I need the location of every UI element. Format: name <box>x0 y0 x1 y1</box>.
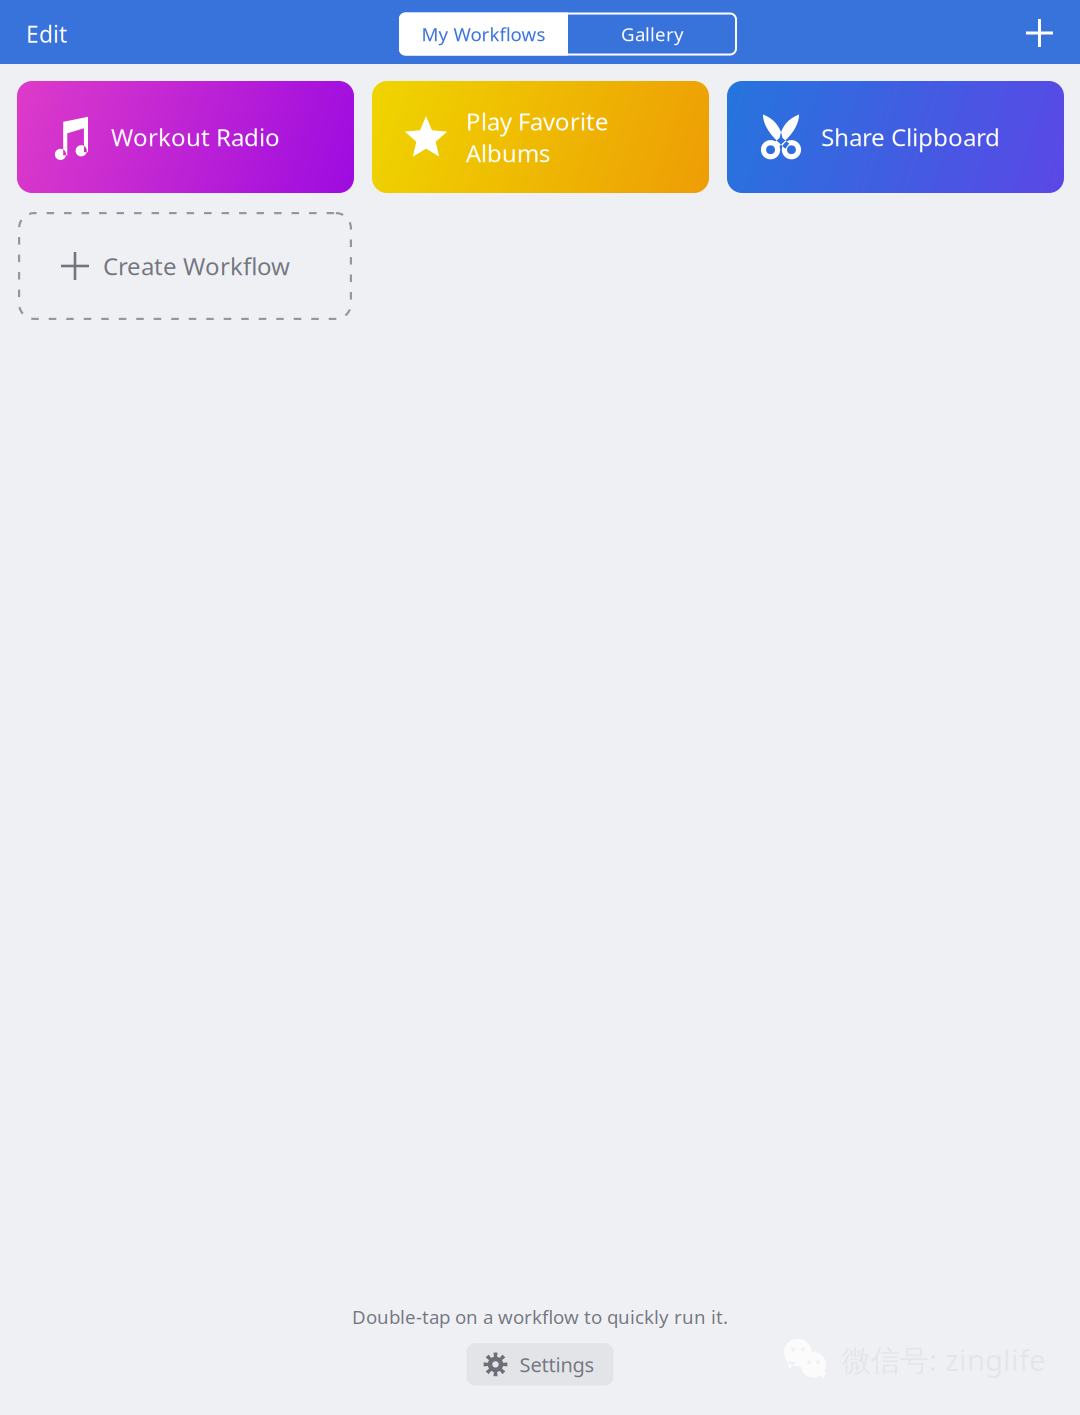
staticText: Double-tap on a workflow to quickly run … <box>352 1304 728 1329</box>
staticText: Play Favorite Albums <box>466 105 609 169</box>
button[interactable]: Settings <box>466 1343 613 1386</box>
button[interactable]: Create <box>1008 4 1080 60</box>
button[interactable]: Share Clipboard <box>727 81 1064 193</box>
button[interactable]: Workout Radio <box>17 81 354 193</box>
staticText: Create Workflow <box>103 250 290 282</box>
button[interactable]: Edit <box>0 3 85 61</box>
staticText: 微信号: zinglife <box>842 1340 1046 1379</box>
staticText: Edit <box>26 19 67 49</box>
staticText: My Workflows <box>421 22 545 46</box>
button[interactable]: Create Workflow <box>18 212 352 320</box>
staticText: Workout Radio <box>111 121 280 153</box>
button[interactable]: Gallery <box>568 12 737 55</box>
button[interactable]: Play Favorite Albums <box>372 81 709 193</box>
button[interactable]: My Workflows <box>399 12 568 55</box>
staticText: Gallery <box>621 22 684 46</box>
staticText: Share Clipboard <box>821 121 1000 153</box>
staticText: Settings <box>519 1351 594 1378</box>
